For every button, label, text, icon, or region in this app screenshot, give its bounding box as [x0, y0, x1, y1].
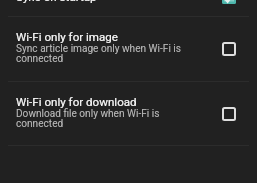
button[interactable]: Wi-Fi only for download [214, 99, 244, 129]
staticText: Sync on startup [16, 0, 97, 4]
staticText: Download file only when Wi-Fi is connect… [16, 108, 196, 129]
staticText: Wi-Fi only for download [16, 95, 137, 109]
button[interactable]: Sync on startup [214, 0, 244, 12]
button[interactable] [0, 83, 257, 146]
button[interactable] [0, 0, 257, 17]
button[interactable] [0, 18, 257, 82]
button[interactable]: Wi-Fi only for image [214, 34, 244, 64]
staticText: Wi-Fi only for image [16, 30, 119, 44]
staticText: Sync article image only when Wi-Fi is co… [16, 43, 196, 64]
